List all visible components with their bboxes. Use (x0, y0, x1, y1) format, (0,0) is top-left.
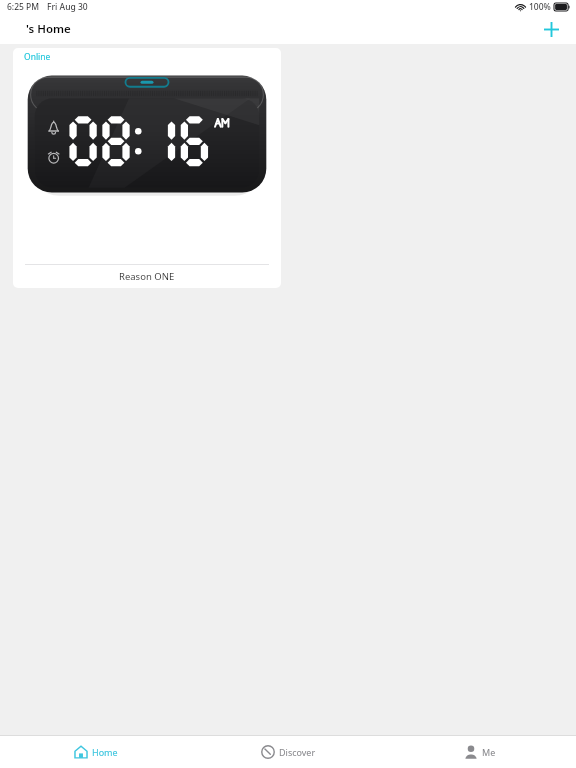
staticText: Home (92, 746, 118, 758)
staticText: Fri Aug 30 (47, 1, 88, 13)
staticText: Reason ONE (119, 270, 175, 283)
staticText: Me (482, 746, 496, 758)
staticText: 's Home (26, 21, 71, 37)
button[interactable]: 's Home (26, 21, 71, 37)
button[interactable]: Online (13, 48, 281, 288)
button[interactable]: Discover (192, 736, 384, 768)
staticText: Discover (279, 746, 316, 758)
button[interactable]: Me (384, 736, 576, 768)
button[interactable]: Home (0, 736, 192, 768)
staticText: 100% (529, 1, 551, 13)
staticText: Online (24, 51, 51, 63)
button[interactable]: Add device (538, 16, 564, 42)
staticText: 6:25 PM (7, 1, 40, 13)
